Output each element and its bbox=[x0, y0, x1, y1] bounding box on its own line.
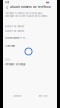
staticText: Cancelar bbox=[12, 95, 21, 97]
button[interactable]: Back bbox=[6, 6, 9, 9]
staticText: 9:41 bbox=[5, 1, 9, 4]
staticText: Introducir un código bbox=[5, 63, 25, 66]
staticText: ▮▮▮ bbox=[46, 1, 49, 3]
staticText: Verificar bbox=[38, 95, 47, 97]
staticText: Continuar bbox=[5, 44, 15, 47]
staticText: ⌄ bbox=[26, 37, 28, 39]
staticText: United States (+1) bbox=[5, 37, 25, 39]
button[interactable]: Verificar bbox=[33, 93, 53, 98]
button[interactable]: United States (+1) bbox=[5, 36, 39, 40]
staticText: Número de teléfono bbox=[5, 25, 24, 28]
staticText: Otro bbox=[5, 58, 10, 61]
button[interactable]: Cancelar bbox=[7, 93, 27, 98]
staticText: Añadir número de teléfono bbox=[10, 5, 51, 9]
staticText: Número de teléfono bbox=[5, 30, 24, 32]
staticText: Introduce tu número de teléfono para con… bbox=[5, 12, 48, 17]
